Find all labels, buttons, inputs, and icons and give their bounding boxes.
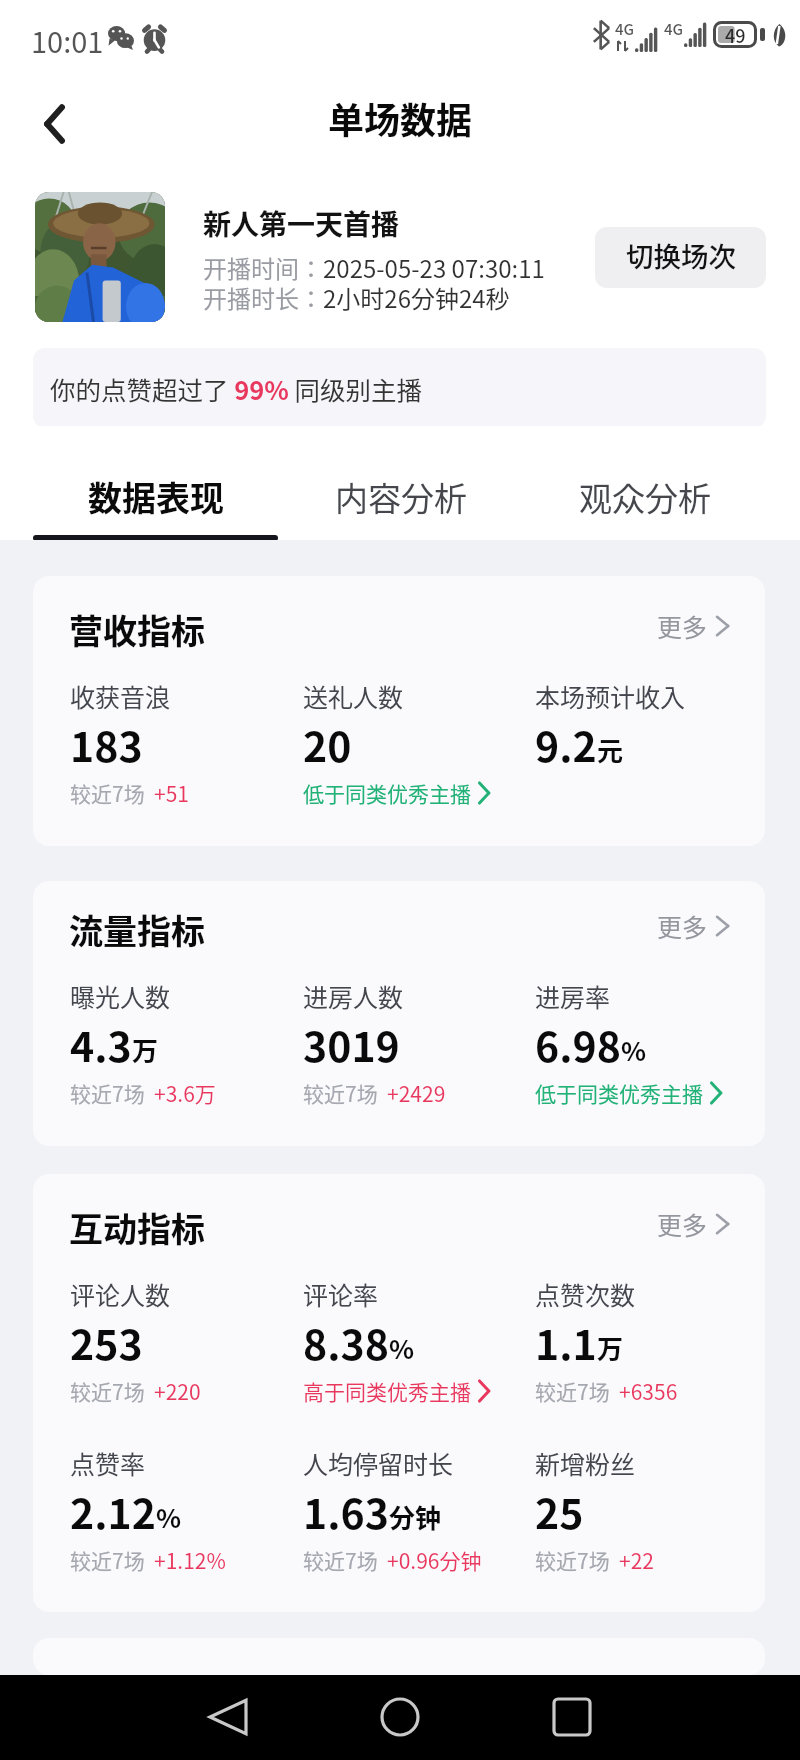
button[interactable]: 营收指标 xyxy=(33,576,765,846)
staticText: 单场数据 xyxy=(328,92,473,144)
staticText: 开播时间： xyxy=(203,250,323,285)
staticText: 点赞率 xyxy=(70,1445,146,1481)
button[interactable]: 更多 xyxy=(655,908,733,944)
button[interactable]: 流量指标 xyxy=(33,881,765,1146)
staticText: 较近7场 +22 xyxy=(535,1545,655,1575)
button[interactable]: 更多 xyxy=(655,1206,733,1242)
staticText: 较近7场 +1.12% xyxy=(70,1545,226,1575)
staticText: 营收指标 xyxy=(69,605,205,654)
button[interactable]: 更多 xyxy=(655,608,733,644)
staticText: 20 xyxy=(303,714,352,773)
staticText: 低于同类优秀主播 xyxy=(535,1078,703,1108)
staticText: 较近7场 +2429 xyxy=(303,1078,446,1108)
staticText: 183 xyxy=(70,714,143,773)
staticText: 切换场次 xyxy=(626,235,736,275)
staticText: 2.12 xyxy=(70,1481,156,1540)
staticText: 6.98 xyxy=(535,1014,621,1073)
staticText: 较近7场 +0.96分钟 xyxy=(303,1545,482,1575)
staticText: 新增粉丝 xyxy=(535,1445,636,1481)
staticText: 高于同类优秀主播 xyxy=(303,1376,471,1406)
staticText: 开播时长： xyxy=(203,280,323,315)
staticText: 收获音浪 xyxy=(70,678,171,714)
staticText: 4G xyxy=(664,18,684,40)
staticText: 评论人数 xyxy=(70,1276,171,1312)
button[interactable]: 切换场次 xyxy=(595,227,766,288)
staticText: 进房率 xyxy=(535,978,611,1014)
staticText: 3019 xyxy=(303,1014,400,1073)
button[interactable]: 内容分析 xyxy=(278,426,524,540)
staticText: 1.1 xyxy=(535,1312,597,1371)
staticText: 4G xyxy=(615,18,635,40)
staticText: 25 xyxy=(535,1481,584,1540)
staticText: 253 xyxy=(70,1312,143,1371)
staticText: 低于同类优秀主播 xyxy=(303,778,471,808)
staticText: 内容分析 xyxy=(335,473,467,521)
staticText: 较近7场 +51 xyxy=(70,778,190,808)
staticText: % xyxy=(389,1329,415,1367)
staticText: % xyxy=(156,1498,182,1536)
button[interactable]: 数据表现 xyxy=(33,426,278,540)
staticText: % xyxy=(621,1031,647,1069)
staticText: 万 xyxy=(132,1031,159,1069)
staticText: 分钟 xyxy=(389,1498,442,1536)
button[interactable]: Recent apps xyxy=(542,1687,602,1747)
button[interactable]: Back xyxy=(26,93,88,155)
button[interactable]: Home xyxy=(370,1687,430,1747)
staticText: 10:01 xyxy=(31,19,104,61)
button[interactable]: 你的点赞超过了 99% 同级别主播 xyxy=(33,348,766,428)
staticText: 较近7场 +220 xyxy=(70,1376,201,1406)
staticText: 较近7场 +6356 xyxy=(535,1376,678,1406)
staticText: 本场预计收入 xyxy=(535,678,686,714)
staticText: 曝光人数 xyxy=(70,978,171,1014)
staticText: 万 xyxy=(597,1329,624,1367)
staticText: 新人第一天首播 xyxy=(203,203,400,244)
staticText: 9.2 xyxy=(535,714,597,773)
staticText: 数据表现 xyxy=(88,472,224,521)
button[interactable]: Back xyxy=(198,1687,258,1747)
staticText: 点赞次数 xyxy=(535,1276,636,1312)
staticText: 元 xyxy=(597,731,624,769)
button[interactable]: 互动指标 xyxy=(33,1174,765,1612)
staticText: 流量指标 xyxy=(69,905,205,954)
staticText: 较近7场 +3.6万 xyxy=(70,1078,216,1108)
staticText: 观众分析 xyxy=(579,473,711,521)
staticText: 送礼人数 xyxy=(303,678,404,714)
staticText: 更多 xyxy=(657,1206,708,1242)
staticText: 2025-05-23 07:30:11 xyxy=(323,250,545,285)
button[interactable]: 观众分析 xyxy=(524,426,766,540)
staticText: 更多 xyxy=(657,608,708,644)
staticText: 进房人数 xyxy=(303,978,404,1014)
staticText: 49 xyxy=(725,22,746,48)
staticText: 你的点赞超过了 99% 同级别主播 xyxy=(50,370,423,407)
staticText: 互动指标 xyxy=(69,1203,205,1252)
staticText: 1.63 xyxy=(303,1481,389,1540)
staticText: 更多 xyxy=(657,908,708,944)
staticText: 4.3 xyxy=(70,1014,132,1073)
staticText: 8.38 xyxy=(303,1312,389,1371)
staticText: 2小时26分钟24秒 xyxy=(323,280,510,315)
staticText: 人均停留时长 xyxy=(303,1445,454,1481)
staticText: 评论率 xyxy=(303,1276,379,1312)
